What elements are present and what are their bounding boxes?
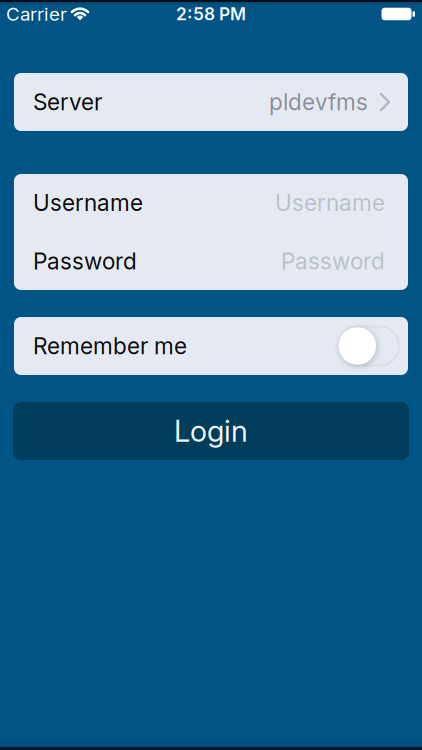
staticText: Username <box>33 189 143 216</box>
staticText: Username <box>275 189 385 216</box>
button[interactable] <box>338 325 400 366</box>
staticText: pldevfms <box>269 89 368 115</box>
button[interactable]: Username <box>14 174 408 231</box>
staticText: Remember me <box>33 333 187 359</box>
staticText: Login <box>174 414 248 448</box>
button[interactable]: Password <box>14 232 408 290</box>
button[interactable]: Login <box>13 402 409 460</box>
staticText: Password <box>33 248 137 275</box>
staticText: Carrier <box>6 3 67 25</box>
button[interactable]: Server <box>14 73 408 131</box>
staticText: Server <box>33 89 102 115</box>
staticText: Password <box>281 248 385 275</box>
staticText: 2:58 PM <box>176 4 246 24</box>
